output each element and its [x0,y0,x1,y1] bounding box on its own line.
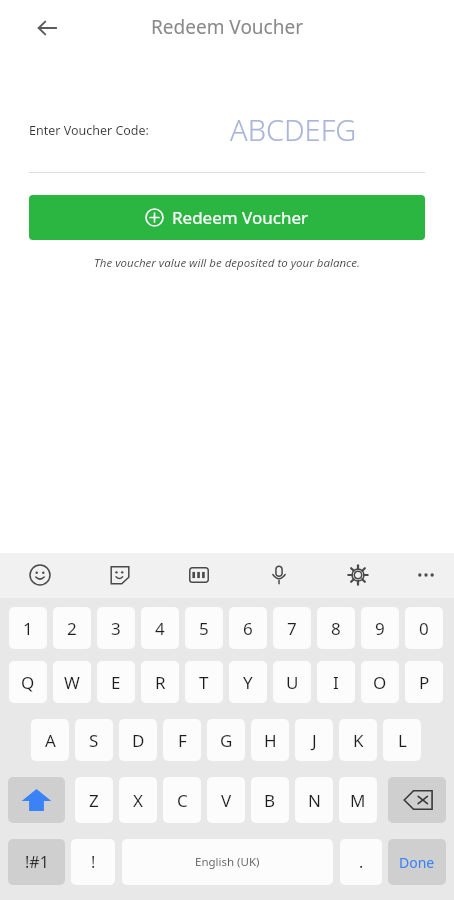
button[interactable]: B [251,777,289,823]
button[interactable]: 3 [97,607,135,649]
button[interactable]: GIF [181,557,217,593]
button[interactable]: W [53,661,91,703]
staticText: P [419,671,430,694]
staticText: X [133,789,143,812]
staticText: R [155,671,166,694]
button[interactable]: 0 [405,607,443,649]
staticText: N [308,789,321,812]
button[interactable]: Keyboard settings [340,557,376,593]
button[interactable]: T [185,661,223,703]
staticText: O [373,671,387,694]
button[interactable]: 1 [9,607,47,649]
button[interactable]: Z [75,777,113,823]
button[interactable]: O [361,661,399,703]
button[interactable]: J [295,719,333,761]
staticText: L [398,729,407,752]
button[interactable]: 2 [53,607,91,649]
staticText: K [353,729,364,752]
staticText: Y [243,671,253,694]
staticText: ABCDEFG [230,110,357,149]
button[interactable]: Backspace [388,777,446,823]
button[interactable]: Shift [8,777,65,823]
staticText: 3 [111,617,121,640]
button[interactable]: Back [27,8,67,48]
staticText: Redeem Voucher [172,206,309,229]
button[interactable]: ! [71,839,115,885]
button[interactable]: L [383,719,421,761]
button[interactable]: 7 [273,607,311,649]
button[interactable]: A [31,719,69,761]
staticText: A [45,729,56,752]
button[interactable]: S [75,719,113,761]
button[interactable]: Redeem Voucher [29,195,425,240]
button[interactable]: H [251,719,289,761]
button[interactable]: 9 [361,607,399,649]
button[interactable]: Done [388,839,446,885]
staticText: U [286,671,299,694]
button[interactable]: P [405,661,443,703]
staticText: S [89,729,99,752]
staticText: 7 [287,617,297,640]
button[interactable]: 5 [185,607,223,649]
staticText: 8 [331,617,341,640]
button[interactable]: I [317,661,355,703]
staticText: . [359,851,364,873]
button[interactable]: 4 [141,607,179,649]
staticText: Done [399,853,435,872]
button[interactable]: R [141,661,179,703]
staticText: The voucher value will be deposited to y… [0,255,454,271]
staticText: C [177,789,188,812]
staticText: M [350,789,366,812]
staticText: Q [21,671,35,694]
button[interactable]: 8 [317,607,355,649]
button[interactable]: Y [229,661,267,703]
button[interactable]: V [207,777,245,823]
button[interactable]: K [339,719,377,761]
button[interactable]: N [295,777,333,823]
staticText: F [178,729,187,752]
button[interactable]: Emoji [22,557,58,593]
button[interactable]: U [273,661,311,703]
staticText: V [221,789,232,812]
button[interactable]: D [119,719,157,761]
staticText: 2 [67,617,77,640]
button[interactable]: Q [9,661,47,703]
button[interactable]: E [97,661,135,703]
staticText: D [132,729,145,752]
button[interactable]: F [163,719,201,761]
staticText: W [64,671,80,694]
button[interactable]: . [340,839,382,885]
staticText: 6 [243,617,253,640]
staticText: B [264,789,276,812]
button[interactable]: Stickers [102,557,138,593]
staticText: 9 [375,617,385,640]
button[interactable]: M [339,777,377,823]
button[interactable]: More options [408,557,444,593]
button[interactable]: English (UK) [122,839,333,885]
button[interactable]: 6 [229,607,267,649]
staticText: Enter Voucher Code: [29,122,149,139]
button[interactable]: C [163,777,201,823]
staticText: Redeem Voucher [151,14,304,40]
button[interactable]: Voice input [261,557,297,593]
staticText: !#1 [25,851,49,873]
staticText: 0 [419,617,429,640]
button[interactable]: G [207,719,245,761]
staticText: ! [91,851,96,873]
staticText: English (UK) [195,854,260,870]
staticText: 4 [155,617,165,640]
staticText: H [264,729,277,752]
button[interactable]: !#1 [8,839,65,885]
staticText: 5 [199,617,209,640]
staticText: J [312,729,317,752]
staticText: 1 [23,617,33,640]
staticText: E [111,671,121,694]
staticText: G [220,729,233,752]
staticText: Z [89,789,99,812]
staticText: T [199,671,209,694]
staticText: I [333,671,339,694]
button[interactable]: X [119,777,157,823]
